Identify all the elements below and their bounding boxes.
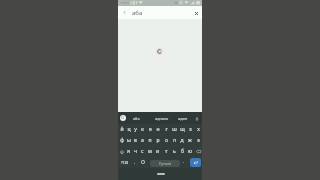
staticText: э — [197, 137, 200, 144]
button[interactable]: Back — [120, 8, 129, 17]
staticText: ж — [188, 137, 192, 144]
button[interactable]: м — [146, 146, 154, 157]
button[interactable]: Clear search — [191, 8, 201, 18]
button[interactable]: г — [162, 124, 170, 135]
staticText: х — [197, 126, 200, 133]
staticText: р — [156, 137, 160, 144]
button[interactable]: один — [174, 114, 192, 123]
button[interactable]: в — [132, 135, 139, 146]
button[interactable]: с — [139, 146, 146, 157]
staticText: а — [141, 137, 144, 144]
button[interactable]: х — [194, 124, 202, 135]
button[interactable]: ж — [186, 135, 194, 146]
button[interactable]: Русский — [150, 160, 180, 167]
button[interactable]: з — [186, 124, 194, 135]
button[interactable]: э — [194, 135, 202, 146]
button[interactable]: л — [170, 135, 178, 146]
staticText: ф — [120, 137, 124, 144]
staticText: . — [183, 159, 185, 165]
button[interactable]: Voice input — [193, 115, 200, 122]
button[interactable]: Enter — [190, 158, 201, 167]
button[interactable]: аба — [127, 114, 145, 123]
staticText: в — [134, 137, 137, 144]
button[interactable]: б — [178, 146, 186, 157]
button[interactable]: однако — [153, 114, 171, 123]
staticText: щ — [180, 126, 185, 133]
staticText: н — [156, 126, 160, 133]
staticText: м — [148, 148, 152, 155]
staticText: я — [127, 148, 130, 155]
button[interactable]: я — [125, 146, 132, 157]
button[interactable]: е — [146, 124, 154, 135]
button[interactable]: у — [132, 124, 139, 135]
staticText: один — [178, 116, 188, 121]
button[interactable]: к — [139, 124, 146, 135]
button[interactable]: и — [154, 146, 162, 157]
staticText: г — [165, 126, 168, 133]
button[interactable]: ц — [125, 124, 132, 135]
button[interactable]: ь — [170, 146, 178, 157]
button[interactable]: д — [178, 135, 186, 146]
staticText: п — [148, 137, 152, 144]
button[interactable]: н — [154, 124, 162, 135]
button[interactable]: о — [162, 135, 170, 146]
staticText: с — [141, 148, 144, 155]
button[interactable]: щ — [178, 124, 186, 135]
staticText: аба — [132, 9, 143, 17]
staticText: ц — [127, 126, 131, 133]
staticText: б — [181, 148, 184, 155]
staticText: й — [120, 126, 124, 133]
button[interactable]: п — [146, 135, 154, 146]
button[interactable]: Home — [157, 173, 165, 175]
staticText: ?123 — [121, 160, 129, 165]
staticText: и — [156, 148, 160, 155]
staticText: у — [134, 126, 137, 133]
button[interactable]: а — [139, 135, 146, 146]
button[interactable]: Shift — [118, 146, 125, 157]
button[interactable]: ?123 — [120, 158, 130, 166]
staticText: ь — [173, 148, 176, 155]
staticText: е — [149, 126, 152, 133]
button[interactable]: . — [180, 158, 187, 166]
button[interactable]: й — [118, 124, 125, 135]
staticText: ы — [127, 137, 131, 144]
button[interactable]: , — [131, 158, 139, 166]
staticText: G — [121, 115, 125, 121]
button[interactable]: Backspace — [194, 146, 202, 157]
staticText: ш — [172, 126, 177, 133]
button[interactable]: Emoji — [139, 158, 147, 166]
staticText: т — [165, 148, 168, 155]
staticText: ю — [188, 148, 192, 155]
staticText: однако — [155, 116, 169, 121]
staticText: , — [134, 159, 136, 165]
staticText: аба — [133, 116, 140, 121]
button[interactable]: р — [154, 135, 162, 146]
button[interactable]: ы — [125, 135, 132, 146]
staticText: Русский — [159, 162, 172, 166]
staticText: з — [189, 126, 192, 133]
staticText: л — [173, 137, 176, 144]
staticText: д — [180, 137, 184, 144]
button[interactable]: т — [162, 146, 170, 157]
button[interactable]: ч — [132, 146, 139, 157]
staticText: о — [165, 137, 168, 144]
staticText: ч — [134, 148, 137, 155]
button[interactable]: ф — [118, 135, 125, 146]
staticText: к — [141, 126, 144, 133]
button[interactable]: ю — [186, 146, 194, 157]
button[interactable]: ш — [170, 124, 178, 135]
button[interactable]: Google — [120, 115, 126, 121]
